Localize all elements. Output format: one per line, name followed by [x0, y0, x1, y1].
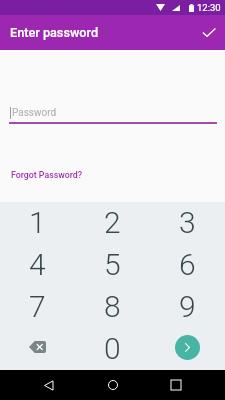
- staticText: 4: [29, 247, 46, 282]
- button[interactable]: 8: [75, 286, 150, 328]
- staticText: 12:30: [197, 2, 221, 13]
- button[interactable]: Delete: [0, 328, 75, 370]
- staticText: 8: [104, 289, 121, 324]
- button[interactable]: Password field: [9, 98, 217, 124]
- staticText: 5: [104, 247, 121, 282]
- button[interactable]: Submit: [150, 328, 225, 370]
- staticText: 9: [179, 289, 196, 324]
- staticText: 2: [104, 205, 121, 240]
- staticText: 6: [179, 247, 196, 282]
- staticText: 0: [104, 331, 121, 366]
- staticText: Password: [12, 107, 57, 119]
- staticText: 3: [179, 205, 196, 240]
- button[interactable]: 6: [150, 244, 225, 286]
- button[interactable]: 7: [0, 286, 75, 328]
- button[interactable]: 1: [0, 202, 75, 244]
- button[interactable]: 9: [150, 286, 225, 328]
- button[interactable]: 2: [75, 202, 150, 244]
- button[interactable]: Forgot Password?: [0, 168, 89, 182]
- staticText: Enter password: [10, 25, 99, 40]
- button[interactable]: Recents: [161, 370, 191, 400]
- staticText: 1: [29, 205, 46, 240]
- button[interactable]: 0: [75, 328, 150, 370]
- button[interactable]: 3: [150, 202, 225, 244]
- button[interactable]: 4: [0, 244, 75, 286]
- button[interactable]: Confirm: [193, 17, 225, 49]
- button[interactable]: Back: [34, 370, 64, 400]
- button[interactable]: 5: [75, 244, 150, 286]
- staticText: 7: [29, 289, 46, 324]
- button[interactable]: Home: [98, 370, 128, 400]
